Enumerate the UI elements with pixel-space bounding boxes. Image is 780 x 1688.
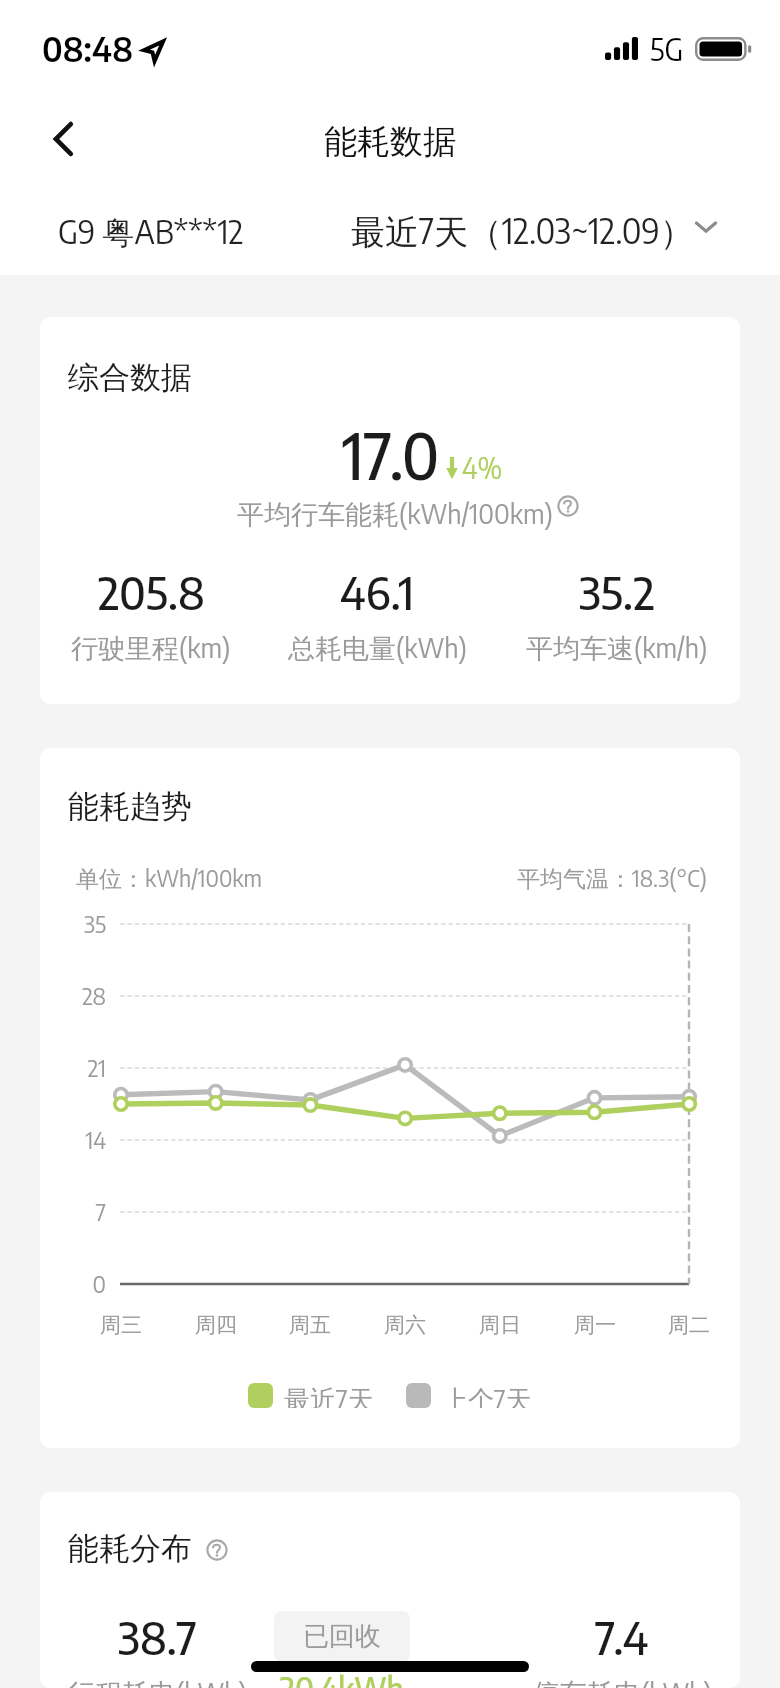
staticText: 周日 [450, 1312, 550, 1338]
staticText: 最近7天（12.03~12.09） [351, 209, 694, 254]
staticText: 7 [42, 1197, 106, 1226]
button[interactable]: G9 粤AB***12 [58, 211, 244, 253]
staticText: 能耗数据 [324, 121, 456, 163]
staticText: 21 [42, 1053, 106, 1082]
staticText: 单位：kWh/100km [76, 863, 262, 894]
staticText: 已回收 [303, 1620, 381, 1653]
staticText: 停车耗电(kWh) [533, 1675, 712, 1688]
staticText: 行驶里程(km) [71, 630, 231, 666]
staticText: 4% [462, 450, 503, 485]
staticText: 周五 [260, 1312, 360, 1338]
staticText: 35 [42, 909, 106, 938]
staticText: 能耗分布 [68, 1529, 192, 1568]
button[interactable]: 最近7天（12.03~12.09） [351, 209, 738, 254]
staticText: 平均行车能耗(kWh/100km) [237, 496, 553, 532]
staticText: 周六 [355, 1312, 455, 1338]
staticText: 28 [42, 981, 106, 1010]
staticText: 行程耗电(kWh) [68, 1675, 247, 1688]
staticText: 周二 [639, 1312, 739, 1338]
staticText: 上个7天 [442, 1382, 532, 1408]
staticText: 能耗趋势 [68, 787, 192, 826]
staticText: 0 [42, 1269, 106, 1298]
staticText: 14 [42, 1125, 106, 1154]
staticText: 7.4 [595, 1609, 649, 1665]
staticText: 20.4kWh [280, 1668, 404, 1688]
staticText: 35.2 [579, 564, 655, 620]
staticText: G9 粤AB***12 [58, 211, 244, 253]
staticText: 17.0 [342, 415, 440, 494]
staticText: 46.1 [340, 564, 414, 620]
staticText: 周一 [545, 1312, 645, 1338]
staticText: 总耗电量(kWh) [288, 630, 467, 666]
staticText: 08:48 [42, 27, 134, 70]
staticText: 最近7天 [284, 1382, 374, 1408]
staticText: 综合数据 [68, 358, 192, 397]
staticText: 5G [650, 30, 684, 67]
staticText: 平均车速(km/h) [526, 630, 708, 666]
staticText: 周三 [71, 1312, 171, 1338]
button[interactable]: Back [32, 114, 88, 170]
staticText: 平均气温：18.3(°C) [517, 863, 707, 894]
staticText: 205.8 [98, 564, 205, 620]
staticText: 38.7 [118, 1609, 197, 1665]
staticText: 周四 [166, 1312, 266, 1338]
